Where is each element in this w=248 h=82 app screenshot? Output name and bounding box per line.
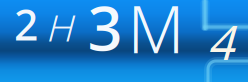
staticText: 2 xyxy=(14,0,38,52)
staticText: H xyxy=(55,2,82,52)
staticText: 3 xyxy=(87,0,122,68)
staticText: 4 xyxy=(220,11,247,73)
staticText: M xyxy=(127,0,184,71)
